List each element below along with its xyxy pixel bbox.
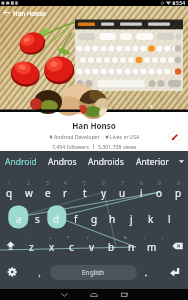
staticText: 3	[46, 180, 49, 187]
staticText: w	[25, 186, 33, 200]
button[interactable]: w	[19, 184, 38, 202]
button[interactable]: 4	[56, 174, 75, 192]
staticText: e	[45, 186, 51, 200]
button[interactable]: 0	[169, 174, 188, 192]
button[interactable]: c	[62, 238, 81, 256]
button[interactable]: v	[82, 238, 101, 256]
button[interactable]: n	[122, 238, 141, 256]
button[interactable]: 6	[94, 174, 113, 192]
button[interactable]: 1	[0, 174, 19, 192]
staticText: 0	[177, 180, 180, 187]
staticText: i	[140, 186, 143, 200]
staticText: c	[69, 240, 74, 254]
staticText: 6	[102, 180, 105, 187]
button[interactable]: Recent apps	[109, 289, 139, 300]
button[interactable]: 7	[113, 174, 132, 192]
button[interactable]: +	[41, 229, 60, 247]
button[interactable]: 5	[75, 174, 94, 192]
staticText: p	[175, 186, 182, 200]
button[interactable]: b	[102, 238, 121, 256]
staticText: -	[31, 235, 33, 241]
staticText: 5,301,738 views	[98, 143, 137, 150]
staticText: b	[108, 240, 115, 254]
button[interactable]: English	[50, 265, 137, 280]
button[interactable]: m	[142, 238, 161, 256]
button[interactable]: k	[141, 210, 160, 228]
button[interactable]: i	[132, 184, 151, 202]
button[interactable]: j	[122, 210, 141, 228]
staticText: n	[128, 240, 135, 254]
staticText: o	[156, 186, 163, 200]
staticText: Han Honso	[72, 120, 116, 131]
staticText: +	[49, 235, 52, 241]
button[interactable]: *	[59, 229, 78, 247]
staticText: *	[67, 235, 70, 241]
button[interactable]: Anterior	[130, 151, 174, 172]
staticText: g	[91, 212, 98, 226]
button[interactable]: Back	[0, 6, 13, 19]
staticText: s	[35, 212, 40, 226]
staticText: 8	[140, 180, 143, 187]
button[interactable]: e	[38, 184, 57, 202]
staticText: Anterior	[136, 156, 169, 168]
button[interactable]: t	[75, 184, 94, 202]
button[interactable]: a	[9, 210, 28, 228]
button[interactable]: o	[150, 184, 169, 202]
button[interactable]: s	[28, 210, 47, 228]
staticText: l	[168, 212, 171, 226]
staticText: 7,454 followers	[52, 143, 89, 150]
button[interactable]: l	[160, 210, 179, 228]
button[interactable]: x	[42, 238, 61, 256]
staticText: u	[119, 186, 126, 200]
button[interactable]: Android	[0, 151, 42, 172]
staticText: m	[147, 240, 157, 254]
button[interactable]: /	[78, 229, 97, 247]
button[interactable]: 9	[150, 174, 169, 192]
button[interactable]: Back	[49, 289, 79, 300]
button[interactable]: f	[66, 210, 85, 228]
button[interactable]: Edit profile	[168, 130, 182, 144]
button[interactable]: y	[94, 184, 113, 202]
button[interactable]: Profile photo	[79, 90, 108, 119]
staticText: Han Honso	[13, 9, 46, 17]
staticText: /	[87, 235, 89, 241]
staticText: z	[29, 240, 34, 254]
button[interactable]: :	[135, 229, 154, 247]
staticText: f	[74, 212, 78, 226]
button[interactable]: z	[22, 238, 41, 256]
button[interactable]: u	[113, 184, 132, 202]
button[interactable]: 2	[19, 174, 38, 192]
staticText: Android	[5, 156, 37, 168]
staticText: j	[130, 212, 133, 226]
staticText: 5	[83, 180, 86, 187]
staticText: 2	[27, 180, 30, 187]
button[interactable]: Androids	[82, 151, 130, 172]
staticText: Andros	[48, 156, 77, 168]
staticText: a	[16, 212, 22, 226]
button[interactable]: More suggestions	[174, 151, 188, 172]
staticText: English	[82, 268, 105, 277]
button[interactable]: Home	[79, 289, 109, 300]
button[interactable]: 8	[132, 174, 151, 192]
staticText: '	[106, 235, 107, 241]
button[interactable]: &	[116, 229, 135, 247]
button[interactable]: r	[56, 184, 75, 202]
staticText: 1	[8, 180, 11, 187]
button[interactable]: -	[22, 229, 41, 247]
button[interactable]: ;	[153, 229, 172, 247]
button[interactable]: g	[85, 210, 104, 228]
button[interactable]: 3	[38, 174, 57, 192]
button[interactable]: q	[0, 184, 19, 202]
staticText: 5:54	[176, 0, 186, 6]
staticText: x	[49, 240, 55, 254]
button[interactable]: '	[97, 229, 116, 247]
staticText: k	[148, 212, 154, 226]
staticText: t	[83, 186, 87, 200]
button[interactable]: h	[103, 210, 122, 228]
button[interactable]: Andros	[42, 151, 82, 172]
staticText: h	[109, 212, 116, 226]
button[interactable]: d	[47, 210, 66, 228]
staticText: r	[63, 186, 68, 200]
button[interactable]: p	[169, 184, 188, 202]
staticText: v	[89, 240, 95, 254]
